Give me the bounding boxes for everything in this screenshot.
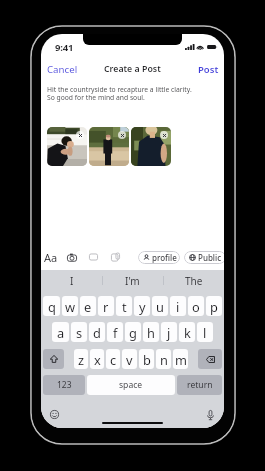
button[interactable]: i bbox=[170, 296, 186, 316]
button[interactable]: c bbox=[106, 349, 120, 369]
button[interactable]: u bbox=[152, 296, 168, 316]
button[interactable]: Post bbox=[193, 59, 224, 78]
staticText: d bbox=[93, 324, 101, 341]
staticText: Aa bbox=[44, 250, 58, 265]
staticText: c bbox=[110, 351, 117, 368]
button[interactable]: Remove photo bbox=[76, 131, 84, 139]
staticText: h bbox=[147, 324, 155, 341]
button[interactable]: k bbox=[179, 322, 195, 342]
button[interactable]: I bbox=[41, 270, 102, 291]
button[interactable]: Numbers bbox=[43, 375, 85, 395]
button[interactable]: Cancel bbox=[41, 59, 84, 78]
staticText: i bbox=[176, 298, 180, 315]
button[interactable]: n bbox=[156, 349, 171, 369]
button[interactable]: The bbox=[163, 270, 224, 291]
staticText: m bbox=[175, 351, 187, 368]
button[interactable]: Remove photo bbox=[131, 127, 171, 166]
staticText: a bbox=[57, 324, 65, 341]
button[interactable]: r bbox=[98, 296, 114, 316]
button[interactable]: Remove photo bbox=[118, 131, 126, 139]
staticText: f bbox=[113, 324, 118, 341]
button[interactable]: Remove photo bbox=[47, 127, 87, 166]
button[interactable]: Camera bbox=[64, 249, 80, 265]
button[interactable]: l bbox=[197, 322, 213, 342]
button[interactable]: s bbox=[71, 322, 87, 342]
button[interactable]: GIF bbox=[85, 249, 101, 265]
staticText: I bbox=[70, 274, 74, 288]
staticText: q bbox=[48, 298, 56, 315]
button[interactable]: e bbox=[80, 296, 96, 316]
button[interactable]: d bbox=[89, 322, 105, 342]
staticText: g bbox=[129, 324, 137, 341]
staticText: y bbox=[139, 298, 146, 315]
button[interactable]: Public bbox=[184, 251, 224, 264]
button[interactable]: Remove photo bbox=[160, 131, 168, 139]
button[interactable]: h bbox=[143, 322, 159, 342]
staticText: v bbox=[126, 351, 133, 368]
button[interactable]: Emoji bbox=[47, 407, 62, 422]
staticText: n bbox=[160, 351, 168, 368]
staticText: return bbox=[187, 379, 213, 391]
staticText: Cancel bbox=[47, 63, 78, 74]
button[interactable]: p bbox=[206, 296, 222, 316]
staticText: Create a Post bbox=[104, 63, 161, 75]
button[interactable]: Attachment bbox=[107, 249, 123, 265]
staticText: u bbox=[156, 298, 164, 315]
button[interactable]: m bbox=[173, 349, 188, 369]
staticText: profile bbox=[152, 252, 177, 263]
staticText: z bbox=[78, 351, 85, 368]
button[interactable]: b bbox=[139, 349, 154, 369]
button[interactable]: space bbox=[87, 375, 175, 395]
staticText: Hit the countryside to recapture a littl… bbox=[47, 85, 192, 102]
staticText: t bbox=[122, 298, 127, 315]
staticText: w bbox=[65, 298, 76, 315]
button[interactable]: x bbox=[90, 349, 104, 369]
button[interactable]: profile bbox=[138, 251, 180, 264]
button[interactable]: o bbox=[188, 296, 204, 316]
staticText: 9:41 bbox=[55, 41, 74, 54]
staticText: I'm bbox=[125, 274, 140, 288]
button[interactable]: q bbox=[43, 296, 60, 316]
staticText: space bbox=[119, 379, 143, 391]
button[interactable]: j bbox=[161, 322, 177, 342]
staticText: The bbox=[185, 274, 203, 288]
button[interactable]: v bbox=[122, 349, 137, 369]
staticText: l bbox=[203, 324, 207, 341]
staticText: Public bbox=[198, 252, 222, 263]
staticText: x bbox=[94, 351, 101, 368]
button[interactable]: y bbox=[134, 296, 150, 316]
button[interactable]: t bbox=[116, 296, 132, 316]
button[interactable]: a bbox=[52, 322, 69, 342]
staticText: k bbox=[184, 324, 191, 341]
staticText: j bbox=[167, 324, 171, 341]
staticText: e bbox=[84, 298, 92, 315]
button[interactable]: Backspace bbox=[198, 349, 222, 369]
button[interactable]: Shift bbox=[43, 349, 64, 369]
button[interactable]: Return bbox=[177, 375, 222, 395]
staticText: p bbox=[210, 298, 218, 315]
button[interactable]: f bbox=[107, 322, 123, 342]
button[interactable]: Text formatting bbox=[43, 249, 59, 265]
staticText: o bbox=[192, 298, 200, 315]
staticText: b bbox=[143, 351, 151, 368]
button[interactable]: g bbox=[125, 322, 141, 342]
button[interactable]: Dictation bbox=[203, 407, 218, 422]
staticText: s bbox=[76, 324, 83, 341]
staticText: r bbox=[103, 298, 109, 315]
staticText: Post bbox=[198, 63, 219, 74]
staticText: 123 bbox=[57, 379, 72, 391]
button[interactable]: I'm bbox=[102, 270, 163, 291]
button[interactable]: z bbox=[74, 349, 88, 369]
button[interactable]: w bbox=[62, 296, 78, 316]
button[interactable]: Remove photo bbox=[89, 127, 129, 166]
